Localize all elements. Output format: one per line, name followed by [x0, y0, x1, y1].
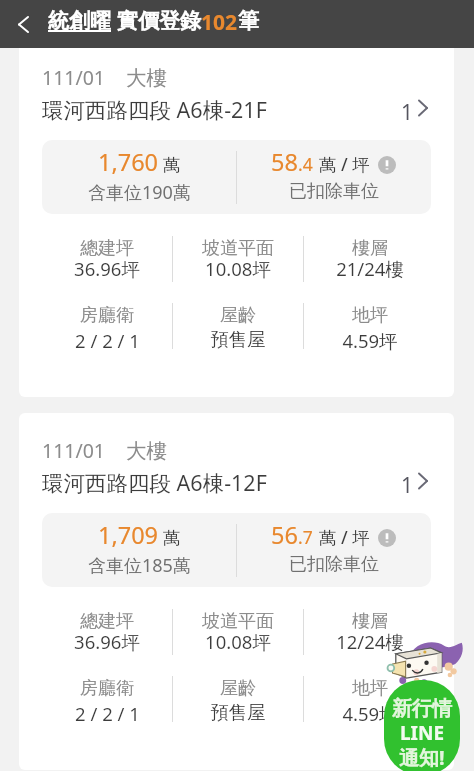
staticText: 大樓 [126, 65, 167, 91]
staticText: 坡道平面 [202, 237, 274, 260]
staticText: 環河西路四段 A6棟-12F [42, 468, 267, 497]
staticText: 地坪 [352, 677, 388, 700]
staticText: .7 [298, 525, 313, 549]
staticText: 總建坪 [80, 610, 134, 633]
button[interactable]: Back [4, 5, 42, 43]
staticText: 屋齡 [220, 304, 256, 327]
staticText: 102 [201, 8, 238, 37]
staticText: 坡道平面 [202, 610, 274, 633]
staticText: 10.08坪 [205, 629, 271, 654]
staticText: LINE [400, 720, 445, 746]
staticText: 通知! [399, 744, 445, 771]
staticText: 1,709 [98, 519, 159, 551]
staticText: 含車位185萬 [88, 553, 191, 578]
button[interactable]: LINE 新行情通知 [384, 640, 466, 766]
staticText: 21/24樓 [336, 256, 404, 281]
staticText: 2 / 2 / 1 [75, 328, 140, 353]
staticText: 房廳衛 [80, 677, 134, 700]
staticText: 萬 [163, 527, 181, 549]
staticText: 樓層 [352, 610, 388, 633]
staticText: 4.59坪 [342, 328, 398, 353]
staticText: 環河西路四段 A6棟-21F [42, 95, 267, 124]
staticText: 58 [271, 146, 298, 178]
staticText: .4 [298, 152, 313, 176]
staticText: 筆 [238, 8, 259, 34]
staticText: 總建坪 [80, 237, 134, 260]
staticText: 萬 / 坪 [319, 152, 370, 176]
staticText: 1 [401, 471, 414, 500]
staticText: 萬 [163, 154, 181, 176]
staticText: 樓層 [352, 237, 388, 260]
staticText: 已扣除車位 [289, 553, 379, 576]
staticText: 預售屋 [210, 701, 266, 724]
button[interactable]: 111/01 [19, 413, 454, 770]
staticText: 111/01 [42, 64, 106, 91]
staticText: 地坪 [352, 304, 388, 327]
staticText: 萬 / 坪 [319, 525, 370, 549]
staticText: 12/24樓 [336, 629, 404, 654]
staticText: 2 / 2 / 1 [75, 701, 140, 726]
staticText: 房廳衛 [80, 304, 134, 327]
staticText: 4.59坪 [342, 701, 398, 726]
staticText: 屋齡 [220, 677, 256, 700]
staticText: 10.08坪 [205, 256, 271, 281]
button[interactable]: 111/01 [19, 40, 454, 397]
staticText: 1,760 [98, 146, 159, 178]
staticText: 36.96坪 [74, 256, 140, 281]
staticText: 已扣除車位 [289, 180, 379, 203]
staticText: 56 [271, 519, 298, 551]
staticText: 111/01 [42, 437, 106, 464]
staticText: 統創曜 [48, 8, 111, 34]
staticText: 大樓 [126, 438, 167, 464]
staticText: 預售屋 [210, 328, 266, 351]
staticText: 實價登錄 [117, 8, 201, 34]
staticText: 含車位190萬 [88, 180, 191, 205]
staticText: 36.96坪 [74, 629, 140, 654]
staticText: 1 [401, 98, 414, 127]
staticText: 新行情 [392, 696, 452, 721]
